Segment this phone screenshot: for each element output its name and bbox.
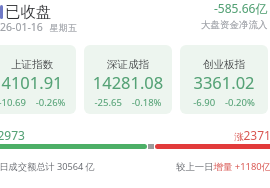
staticText: -10.69 -0.26% (0, 96, 76, 109)
staticText: -585.66亿 (214, 0, 268, 16)
staticText: 创业板指 (180, 58, 268, 71)
staticText: 3361.02 (180, 71, 268, 93)
button[interactable]: 创业板指 (180, 45, 268, 114)
staticText: 涨2371 (234, 127, 270, 143)
staticText: 4101.91 (0, 71, 76, 93)
staticText: 深证成指 (84, 58, 172, 71)
staticText: 2026-01-16 星期五 (0, 20, 77, 34)
staticText: -25.65 -0.18% (84, 96, 172, 109)
staticText: 较上一日增量 +1180亿 (176, 160, 270, 173)
staticText: 两市日成交额总计 30564 亿 (0, 160, 95, 173)
button[interactable]: 深证成指 (84, 45, 172, 114)
staticText: 上证指数 (0, 58, 76, 71)
staticText: 14281.08 (84, 71, 172, 93)
staticText: 跌2973 (0, 127, 25, 143)
staticText: 大盘资金净流入 (201, 19, 268, 31)
button[interactable]: 上证指数 (0, 45, 76, 114)
staticText: 已收盘 (5, 2, 52, 22)
staticText: -6.90 -0.20% (180, 96, 268, 109)
